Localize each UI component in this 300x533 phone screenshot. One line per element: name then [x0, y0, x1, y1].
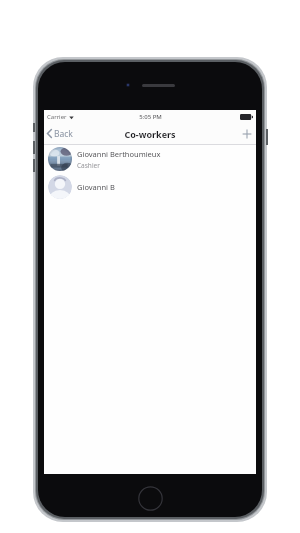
- staticText: Cashier: [77, 161, 100, 170]
- staticText: 5:05 PM: [139, 113, 162, 121]
- staticText: Giovanni Berthoumieux: [77, 149, 161, 159]
- button[interactable]: Giovanni B: [44, 173, 256, 201]
- staticText: Carrier: [47, 113, 67, 121]
- staticText: Giovanni B: [77, 182, 115, 192]
- button[interactable]: Back: [44, 123, 79, 144]
- button[interactable]: Add co-worker: [238, 123, 256, 144]
- staticText: Co-workers: [124, 128, 176, 140]
- staticText: Back: [54, 128, 73, 140]
- button[interactable]: Giovanni Berthoumieux: [44, 145, 256, 173]
